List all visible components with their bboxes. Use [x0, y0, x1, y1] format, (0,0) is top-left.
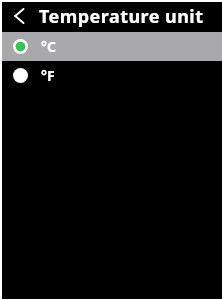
button[interactable]: Navigate up: [2, 2, 36, 32]
button[interactable]: °F: [2, 61, 222, 90]
staticText: °F: [41, 66, 55, 85]
button[interactable]: °C: [2, 32, 222, 61]
staticText: Temperature unit: [39, 4, 204, 29]
staticText: °C: [41, 37, 56, 56]
